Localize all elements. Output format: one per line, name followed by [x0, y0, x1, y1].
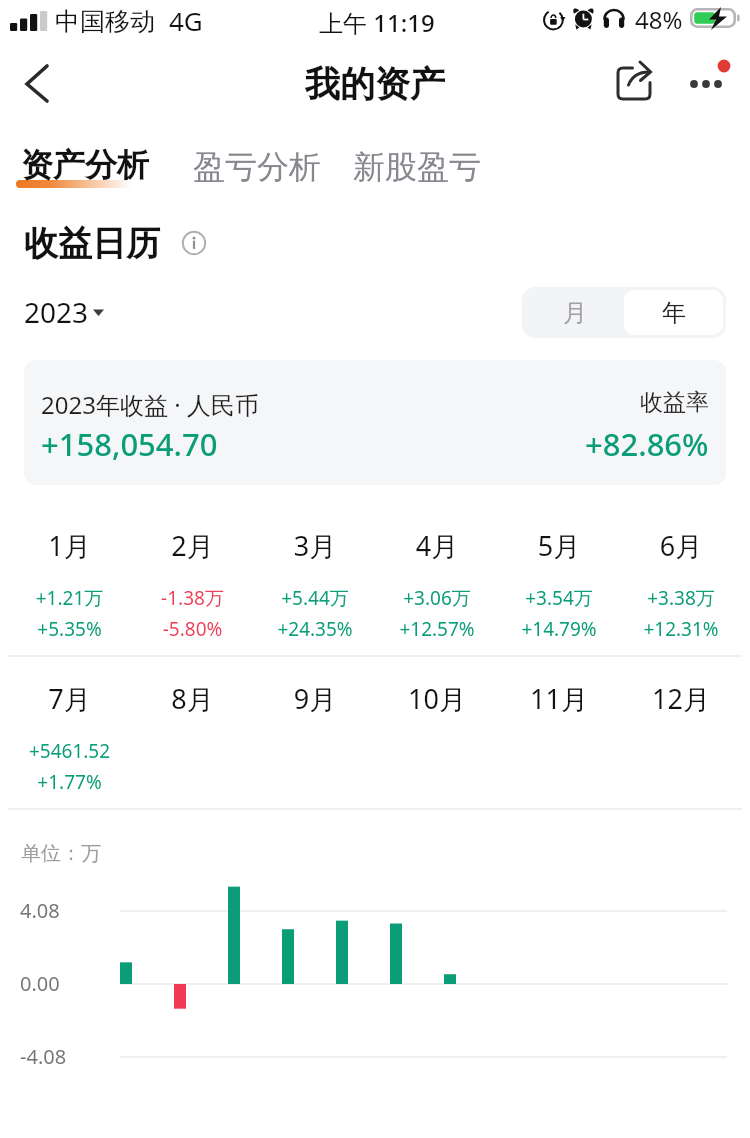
- staticText: 盈亏分析: [193, 147, 321, 187]
- staticText: +3.54万: [498, 585, 620, 611]
- staticText: 4.08: [20, 897, 60, 924]
- staticText: 上午 11:19: [319, 6, 435, 39]
- staticText: 2023: [24, 293, 89, 331]
- staticText: 1月: [8, 527, 131, 564]
- button[interactable]: 新股盈亏: [338, 140, 496, 194]
- staticText: 2023年收益 · 人民币: [41, 388, 259, 421]
- staticText: 8月: [131, 680, 254, 717]
- staticText: +5461.52: [8, 738, 131, 764]
- staticText: +5.44万: [254, 585, 376, 611]
- staticText: +12.57%: [376, 616, 498, 642]
- staticText: +1.77%: [8, 769, 131, 795]
- staticText: 收益率: [640, 388, 709, 417]
- staticText: 11月: [498, 680, 620, 717]
- button[interactable]: 1月: [8, 504, 131, 655]
- button[interactable]: Back: [6, 52, 68, 108]
- staticText: 单位：万: [21, 841, 101, 866]
- button[interactable]: 7月: [8, 657, 131, 808]
- button[interactable]: 2月: [131, 504, 254, 655]
- button[interactable]: 12月: [620, 657, 742, 808]
- button[interactable]: 2023年收益 · 人民币: [24, 360, 726, 485]
- staticText: 6月: [620, 527, 742, 564]
- staticText: 12月: [620, 680, 742, 717]
- staticText: +3.38万: [620, 585, 742, 611]
- staticText: 48%: [635, 3, 683, 36]
- button[interactable]: 年: [624, 290, 723, 335]
- staticText: +82.86%: [585, 423, 709, 465]
- staticText: 中国移动: [55, 6, 155, 37]
- staticText: +12.31%: [620, 616, 742, 642]
- staticText: +3.06万: [376, 585, 498, 611]
- button[interactable]: 10月: [376, 657, 498, 808]
- staticText: -5.80%: [131, 616, 254, 642]
- staticText: 4G: [169, 3, 203, 38]
- button[interactable]: 资产分析: [6, 138, 164, 192]
- staticText: 年: [662, 298, 686, 328]
- staticText: -4.08: [20, 1043, 67, 1070]
- staticText: 2月: [131, 527, 254, 564]
- staticText: 资产分析: [21, 145, 149, 185]
- button[interactable]: 3月: [254, 504, 376, 655]
- button[interactable]: 盈亏分析: [178, 140, 336, 194]
- staticText: 10月: [376, 680, 498, 717]
- button[interactable]: Share: [604, 54, 664, 106]
- staticText: +1.21万: [8, 585, 131, 611]
- staticText: 4月: [376, 527, 498, 564]
- button[interactable]: 6月: [620, 504, 742, 655]
- staticText: 月: [563, 298, 587, 328]
- button[interactable]: 2023: [14, 285, 114, 339]
- staticText: 7月: [8, 680, 131, 717]
- staticText: +5.35%: [8, 616, 131, 642]
- staticText: 9月: [254, 680, 376, 717]
- staticText: 我的资产: [305, 62, 445, 106]
- button[interactable]: 8月: [131, 657, 254, 808]
- staticText: 收益日历: [24, 222, 160, 265]
- button[interactable]: 4月: [376, 504, 498, 655]
- staticText: 新股盈亏: [353, 147, 481, 187]
- staticText: 0.00: [20, 970, 60, 997]
- button[interactable]: 11月: [498, 657, 620, 808]
- button[interactable]: Info: [176, 225, 212, 261]
- button[interactable]: More options: [678, 52, 738, 108]
- button[interactable]: 9月: [254, 657, 376, 808]
- button[interactable]: 月: [525, 290, 624, 335]
- staticText: +14.79%: [498, 616, 620, 642]
- staticText: 5月: [498, 527, 620, 564]
- staticText: +158,054.70: [41, 423, 218, 465]
- button[interactable]: 5月: [498, 504, 620, 655]
- staticText: +24.35%: [254, 616, 376, 642]
- staticText: -1.38万: [131, 585, 254, 611]
- staticText: 3月: [254, 527, 376, 564]
